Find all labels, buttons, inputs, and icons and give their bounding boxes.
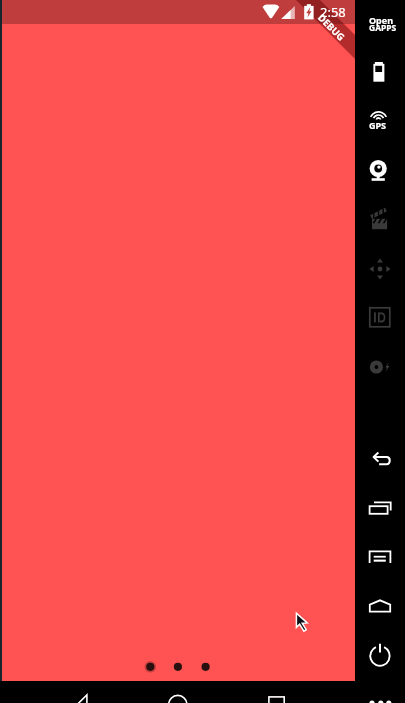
- staticText: GPS: [369, 119, 387, 131]
- button[interactable]: [0, 0, 355, 681]
- staticText: 2:58: [320, 3, 346, 21]
- staticText: DEBUG: [315, 11, 348, 44]
- staticText: GAPPS: [369, 22, 397, 34]
- staticText: Open: [369, 14, 394, 26]
